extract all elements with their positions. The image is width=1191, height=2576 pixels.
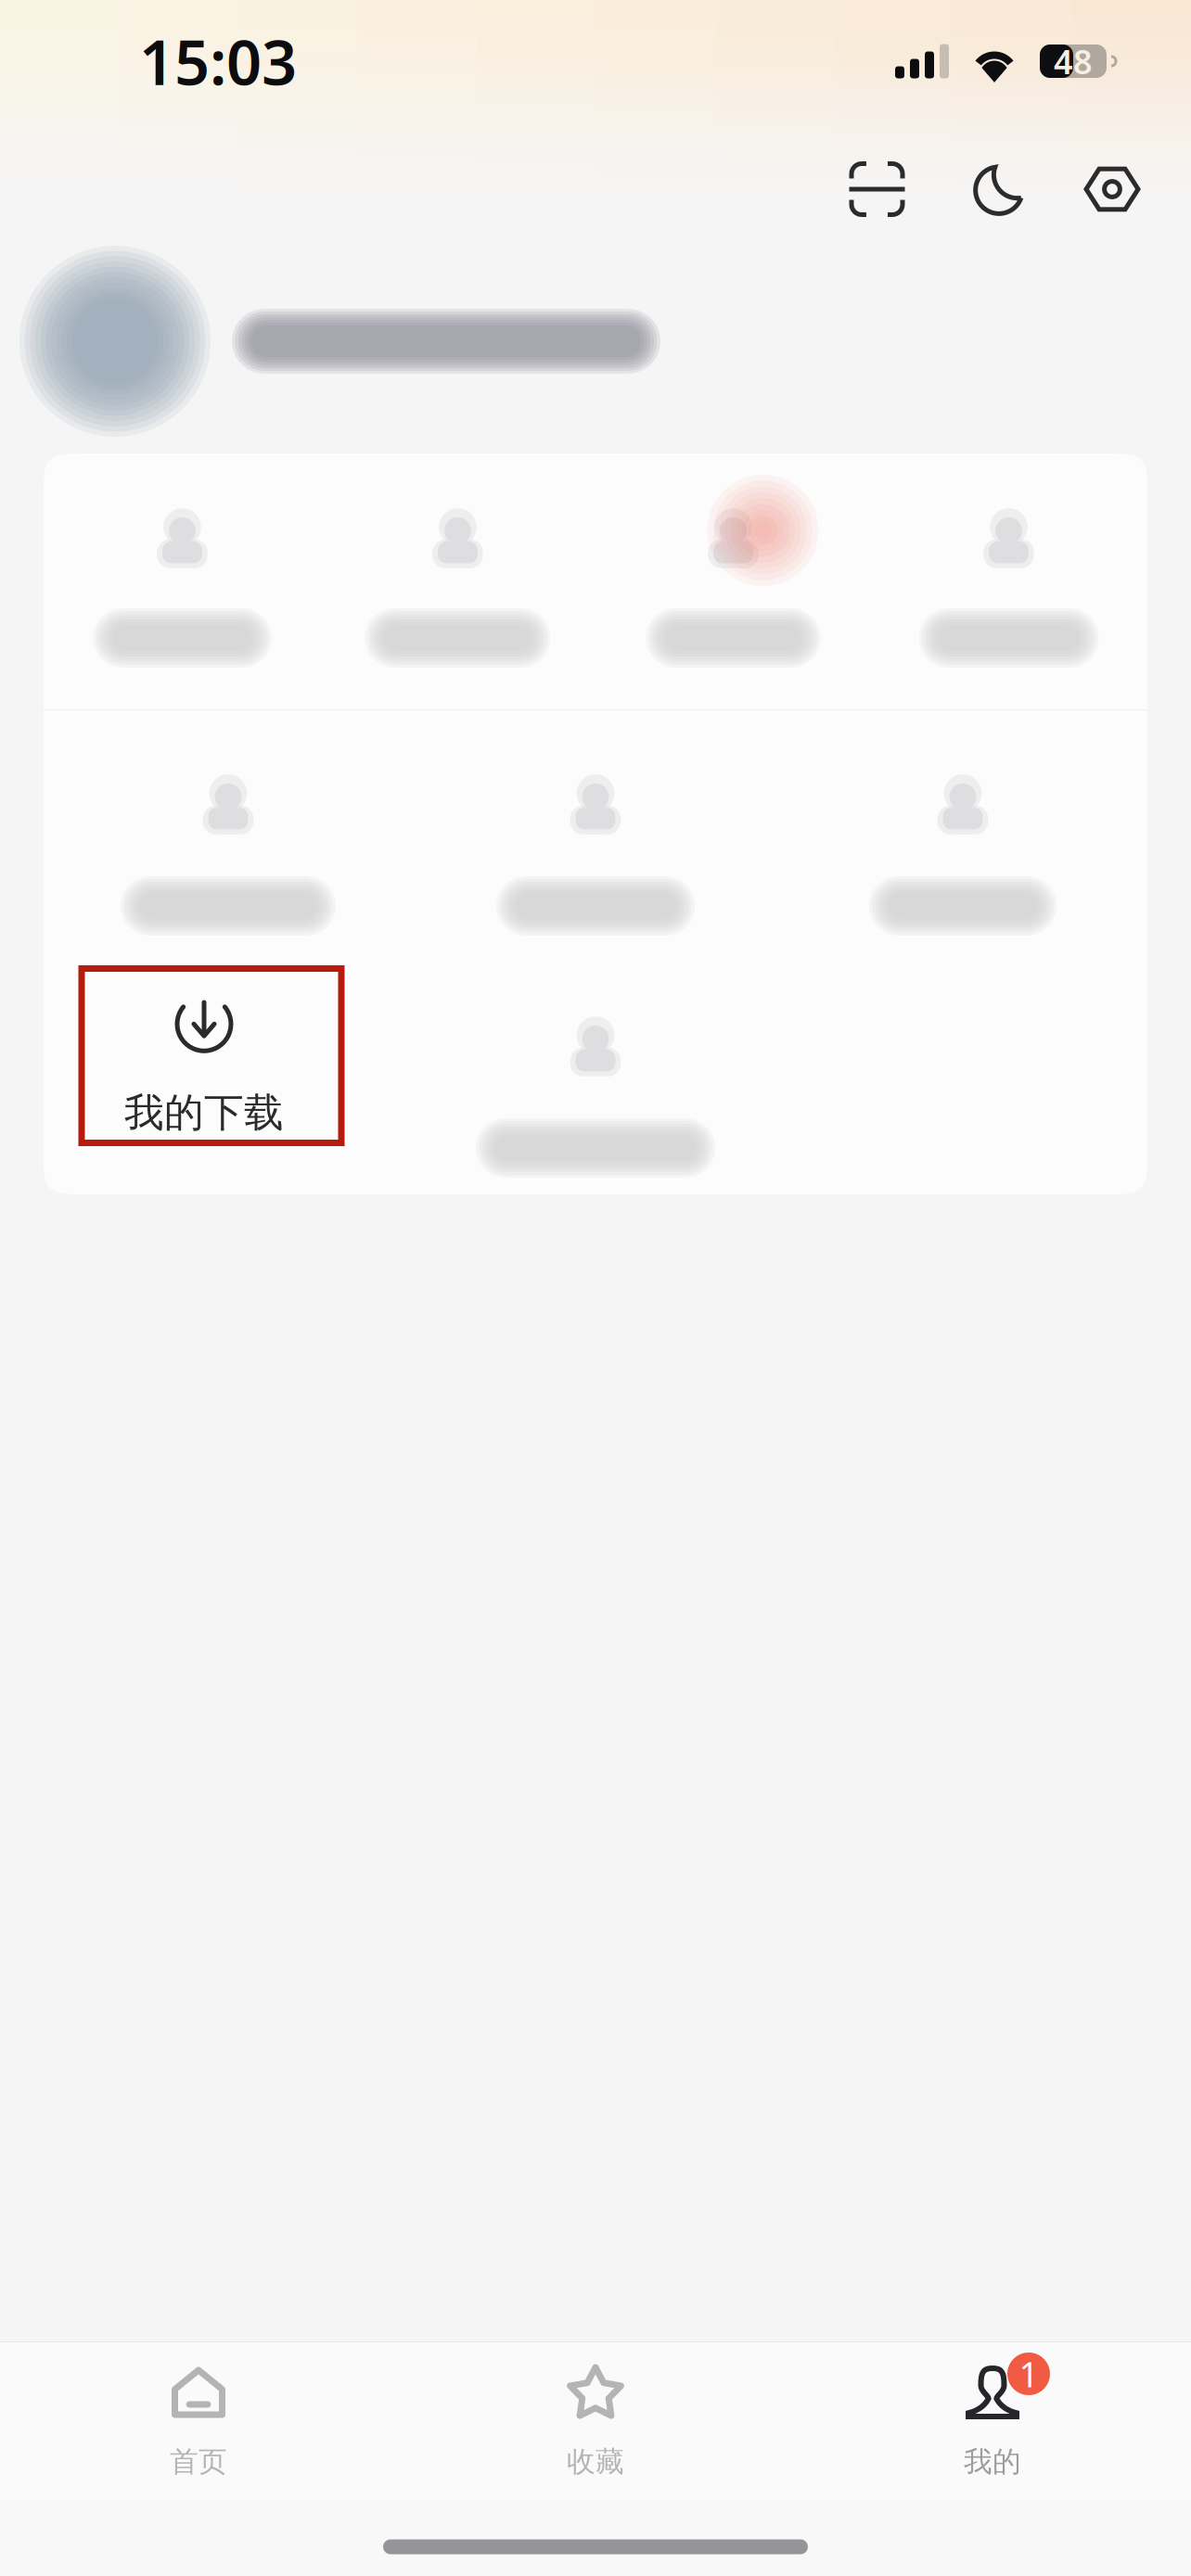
button[interactable] bbox=[45, 710, 412, 952]
button[interactable] bbox=[0, 229, 1191, 453]
staticText: 收藏 bbox=[567, 2444, 624, 2479]
button[interactable] bbox=[779, 710, 1146, 952]
button[interactable] bbox=[45, 453, 320, 709]
button[interactable]: 设置 bbox=[1061, 149, 1163, 229]
button[interactable] bbox=[595, 453, 871, 709]
button[interactable]: 首页 bbox=[0, 2342, 397, 2501]
button[interactable]: 夜间模式 bbox=[938, 149, 1061, 229]
button[interactable]: 收藏 bbox=[397, 2342, 794, 2501]
button[interactable] bbox=[320, 453, 595, 709]
staticText: 我的下载 bbox=[124, 1088, 284, 1137]
staticText: 48 bbox=[1054, 39, 1093, 83]
button[interactable] bbox=[412, 952, 779, 1194]
button[interactable] bbox=[412, 710, 779, 952]
staticText: 首页 bbox=[170, 2444, 227, 2479]
button[interactable] bbox=[871, 453, 1146, 709]
staticText: 我的 bbox=[964, 2444, 1021, 2479]
button[interactable]: 1 bbox=[794, 2342, 1191, 2501]
button[interactable]: 扫一扫 bbox=[816, 149, 938, 229]
staticText: 1 bbox=[1019, 2351, 1038, 2397]
staticText: 15:03 bbox=[139, 20, 297, 102]
button[interactable]: 我的下载 bbox=[45, 952, 412, 1194]
